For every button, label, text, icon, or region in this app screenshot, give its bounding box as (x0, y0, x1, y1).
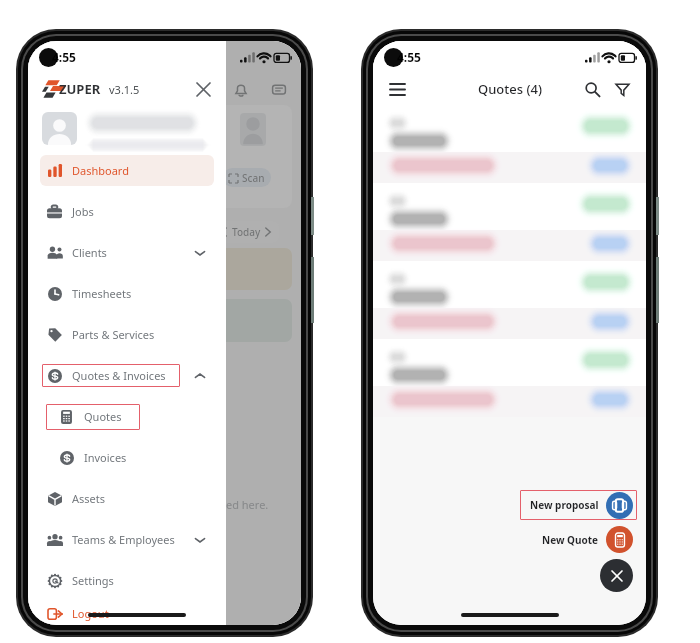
button[interactable]: New proposal (520, 490, 637, 520)
button[interactable]: Quotes (40, 401, 214, 432)
button[interactable] (373, 261, 646, 339)
staticText: Dashboard (72, 163, 129, 178)
button[interactable] (373, 339, 646, 417)
button[interactable]: Quotes & Invoices (40, 360, 214, 391)
staticText: Jobs (72, 204, 94, 219)
staticText: Logout (72, 606, 109, 621)
staticText: Scan (242, 171, 265, 185)
button[interactable]: Settings (40, 565, 214, 596)
staticText: Quotes (84, 409, 122, 424)
button[interactable]: Assets (40, 483, 214, 514)
button[interactable]: Clients (40, 237, 214, 268)
button[interactable] (373, 183, 646, 261)
staticText: 4:55 (397, 49, 421, 65)
button[interactable]: Close menu (600, 559, 633, 592)
button[interactable] (373, 105, 646, 183)
button[interactable]: Filter (610, 77, 634, 101)
button[interactable]: Invoices (40, 442, 214, 473)
staticText: Clients (72, 245, 107, 260)
button[interactable] (42, 109, 212, 147)
staticText: Settings (72, 573, 114, 588)
button[interactable]: New Quote (542, 526, 637, 553)
staticText: Teams & Employees (72, 532, 175, 547)
staticText: Nothing scheduled here. (141, 497, 269, 512)
button[interactable]: Dashboard (40, 155, 214, 186)
staticText: Quotes (4) (478, 80, 542, 98)
staticText: Assets (72, 491, 106, 506)
staticText: Parts & Services (72, 327, 155, 342)
staticText: Quotes & Invoices (72, 368, 166, 383)
staticText: 4:55 (52, 49, 76, 65)
button[interactable]: Logout (40, 601, 214, 625)
button[interactable]: Jobs (40, 196, 214, 227)
button[interactable]: Timesheets (40, 278, 214, 309)
staticText: New proposal (530, 498, 599, 512)
button[interactable]: Open menu (385, 77, 409, 101)
staticText: v3.1.5 (109, 82, 140, 97)
button[interactable]: Close drawer (190, 76, 216, 102)
button[interactable]: Search (580, 77, 604, 101)
staticText: Invoices (84, 450, 127, 465)
staticText: Timesheets (72, 286, 132, 301)
button[interactable]: Parts & Services (40, 319, 214, 350)
staticText: New Quote (542, 533, 599, 547)
staticText: ZUPER (59, 80, 101, 98)
staticText: Today (232, 225, 261, 239)
button[interactable]: Teams & Employees (40, 524, 214, 555)
